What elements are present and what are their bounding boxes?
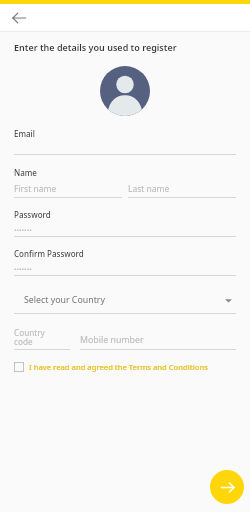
staticText: Country code [14,327,45,348]
button[interactable]: Country code [14,327,70,350]
button[interactable]: Back [6,5,32,31]
staticText: Mobile number [80,334,144,346]
staticText: Enter the details you used to register [14,41,177,53]
button[interactable]: First name [14,183,122,198]
button[interactable]: Next [210,470,244,504]
button[interactable]: Password [14,209,236,237]
staticText: Password [14,209,51,220]
staticText: Name [14,167,37,178]
staticText: Last name [128,183,170,195]
button[interactable]: Select your Country [14,294,236,314]
button[interactable]: Profile photo [100,66,150,116]
staticText: ······· [14,262,32,274]
button[interactable]: Mobile number [80,334,236,350]
button[interactable]: Last name [128,183,236,198]
staticText: Confirm Password [14,248,84,259]
staticText: Email [14,128,35,139]
staticText: First name [14,183,57,195]
staticText: ······· [14,223,32,235]
button[interactable]: I have read and agreed the Terms and Con… [14,362,208,372]
button[interactable]: Confirm Password [14,248,236,276]
staticText: I have read and agreed the Terms and Con… [29,362,208,372]
staticText: Select your Country [24,294,225,306]
